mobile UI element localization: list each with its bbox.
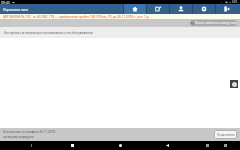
button[interactable]: Log out [215,4,238,14]
staticText: Продолжить [217,133,235,137]
button[interactable]: Продолжить [214,130,237,139]
button[interactable]: Handle [230,80,238,88]
button[interactable]: Documents [146,4,169,14]
button[interactable]: Screenshot [221,141,229,150]
staticText: Настройка сигнализатора напоминания о те… [4,31,93,35]
button[interactable]: Home [116,141,124,150]
staticText: │ [221,1,223,4]
staticText: Перевозки авто [3,7,29,11]
staticText: 09:45 [1,0,10,4]
staticText: АВТОМОБИЛЬ ГОС. № А123ВС 178 — пройденны… [3,15,150,19]
button[interactable]: Settings [192,4,215,14]
button[interactable]: Menu [27,141,35,150]
staticText: Поиск рейса по номеру или точке [195,21,237,25]
staticText: 84% [232,0,238,4]
button[interactable]: Поиск рейса по номеру или точке [190,20,237,26]
button[interactable]: Home [123,4,146,14]
button[interactable]: Back [163,141,171,150]
button[interactable]: Recent apps [68,141,76,150]
staticText: на вашем маршруте [3,135,34,139]
button[interactable]: Keyboard [203,141,211,150]
button[interactable]: Profile [169,4,192,14]
staticText: Отклонение от графика 26.11.2018 [3,130,56,134]
